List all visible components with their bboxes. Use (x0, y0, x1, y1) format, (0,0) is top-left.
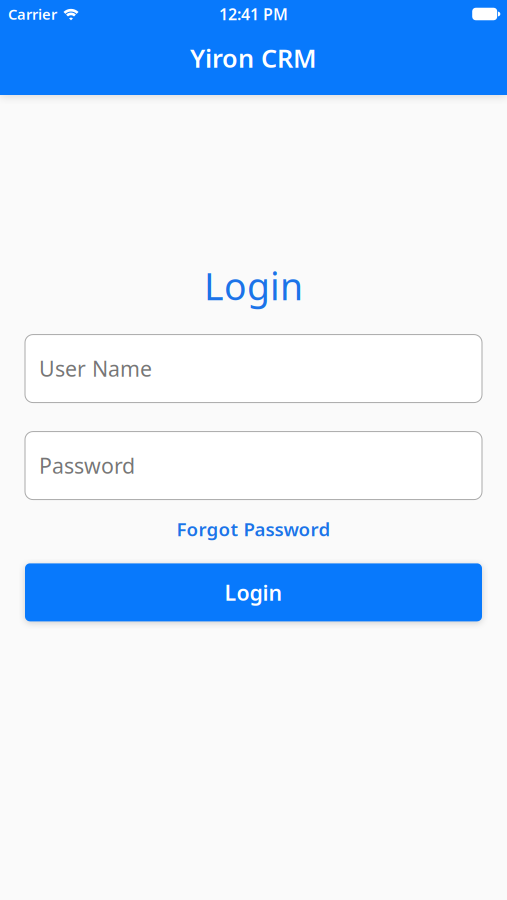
staticText: Password (39, 451, 135, 480)
staticText: Carrier (8, 4, 57, 24)
staticText: 12:41 PM (219, 3, 288, 25)
staticText: Login (224, 578, 282, 606)
staticText: Yiron CRM (190, 41, 317, 75)
staticText: Login (204, 261, 303, 311)
button[interactable]: User Name (0, 335, 507, 403)
staticText: Forgot Password (176, 517, 330, 541)
button[interactable]: Login (25, 563, 482, 621)
button[interactable]: Password (0, 432, 507, 500)
staticText: User Name (39, 354, 152, 383)
button[interactable]: Forgot Password (168, 517, 338, 541)
